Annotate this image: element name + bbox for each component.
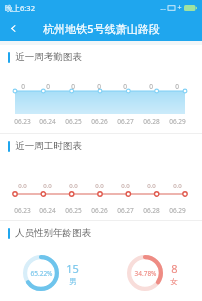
staticText: 06.27	[117, 206, 134, 215]
staticText: 65.22%	[30, 269, 53, 278]
staticText: +	[177, 3, 182, 13]
staticText: 0	[97, 82, 101, 91]
staticText: 06.27	[117, 117, 134, 126]
button[interactable]: 65.22%	[0, 254, 101, 292]
staticText: 0	[123, 82, 127, 91]
staticText: 0.0	[173, 182, 182, 190]
staticText: 06.29	[169, 117, 186, 126]
staticText: 06.26	[91, 206, 108, 215]
staticText: 8	[171, 261, 178, 276]
staticText: 15	[66, 261, 79, 276]
staticText: 0.0	[121, 182, 130, 190]
staticText: 人员性别年龄图表	[15, 227, 91, 239]
staticText: 杭州地铁5号线萧山路段	[43, 21, 160, 36]
staticText: 06.25	[65, 206, 82, 215]
staticText: 近一周工时图表	[15, 140, 82, 152]
staticText: 06.29	[169, 206, 186, 215]
staticText: 0.0	[95, 182, 104, 190]
staticText: 女	[170, 277, 178, 286]
staticText: 0.0	[43, 182, 52, 190]
staticText: 0	[46, 82, 50, 91]
staticText: 06.23	[14, 206, 31, 215]
staticText: 0	[71, 82, 75, 91]
staticText: 06.24	[39, 117, 56, 126]
staticText: 男	[69, 277, 77, 286]
staticText: 06.24	[39, 206, 56, 215]
staticText: ...	[160, 3, 166, 13]
staticText: 近一周考勤图表	[15, 51, 82, 63]
button[interactable]: Back	[0, 15, 26, 41]
staticText: 0	[149, 82, 153, 91]
button[interactable]: 34.78%	[101, 254, 202, 292]
staticText: 34.78%	[134, 269, 157, 278]
staticText: 06.23	[14, 117, 31, 126]
staticText: 0.0	[147, 182, 156, 190]
staticText: 0.0	[18, 182, 27, 190]
staticText: 0	[175, 82, 179, 91]
staticText: 06.28	[143, 206, 160, 215]
staticText: 晚上6:32	[5, 3, 35, 13]
staticText: 06.28	[143, 117, 160, 126]
staticText: 0.0	[69, 182, 78, 190]
staticText: 06.26	[91, 117, 108, 126]
staticText: 06.25	[65, 117, 82, 126]
staticText: 0	[21, 82, 25, 91]
